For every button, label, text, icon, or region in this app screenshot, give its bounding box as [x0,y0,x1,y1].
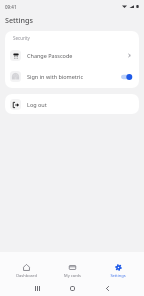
staticText: 09:41 [5,4,17,10]
staticText: Dashboard [16,273,37,278]
button[interactable]: Settings [95,252,141,281]
button[interactable]: Home [55,286,90,291]
button[interactable]: Back [90,286,125,291]
button[interactable]: Change Passcode [5,45,139,66]
button[interactable]: Dashboard [3,252,49,281]
staticText: Change Passcode [27,52,73,59]
button[interactable]: Log out [5,94,139,114]
staticText: Settings [5,15,33,25]
button[interactable]: Sign in with biometric [5,66,139,87]
staticText: Security [13,35,30,41]
staticText: Sign in with biometric [27,73,84,80]
staticText: Log out [27,101,47,108]
staticText: My cards [64,273,81,278]
button[interactable]: Recents [19,286,55,291]
button[interactable]: Toggle biometric sign in [121,74,132,80]
button[interactable]: My cards [49,252,95,281]
staticText: Settings [110,273,126,278]
